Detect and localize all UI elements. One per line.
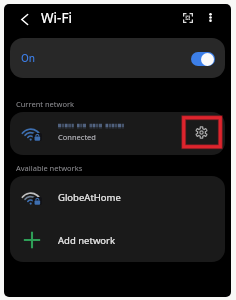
staticText: On	[21, 51, 36, 65]
button[interactable]: On	[10, 38, 225, 78]
button[interactable]: More options	[200, 5, 220, 30]
button[interactable]: Connected	[10, 112, 225, 155]
button[interactable]: Navigate up	[13, 7, 36, 32]
button[interactable]: Wi-Fi on	[191, 52, 215, 66]
staticText: Connected	[58, 132, 96, 142]
staticText: Available networks	[16, 163, 83, 173]
staticText: Add network	[58, 234, 116, 247]
button[interactable]: Network settings	[189, 120, 213, 144]
staticText: GlobeAtHome	[58, 191, 121, 204]
button[interactable]: Scan QR code	[177, 5, 198, 30]
staticText: Current network	[16, 99, 75, 109]
button[interactable]: Add network	[10, 219, 225, 262]
staticText: Wi-Fi	[41, 9, 72, 27]
button[interactable]: GlobeAtHome	[10, 176, 225, 219]
